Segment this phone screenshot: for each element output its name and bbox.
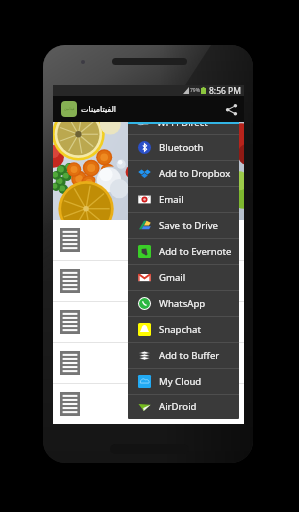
button[interactable]: Gmail <box>128 265 239 290</box>
button[interactable]: AirDroid <box>128 395 239 418</box>
staticText: Wi-Fi Direct <box>157 122 208 128</box>
button[interactable] <box>53 220 244 260</box>
button[interactable] <box>53 343 244 383</box>
staticText: Snapchat <box>159 323 201 336</box>
button[interactable] <box>128 124 239 134</box>
button[interactable]: Add to Dropbox <box>128 161 239 186</box>
staticText: Bluetooth <box>159 141 204 154</box>
button[interactable]: WhatsApp <box>128 291 239 316</box>
staticText: 8:56 PM <box>209 85 241 96</box>
button[interactable]: My Cloud <box>128 369 239 394</box>
staticText: Add to Dropbox <box>159 167 231 180</box>
staticText: Add to Evernote <box>159 245 232 258</box>
button[interactable]: Save to Drive <box>128 213 239 238</box>
staticText: WhatsApp <box>159 297 206 310</box>
staticText: الفيتامينات <box>81 105 117 114</box>
staticText: AirDroid <box>159 400 197 413</box>
staticText: Email <box>159 193 184 206</box>
button[interactable] <box>53 384 244 424</box>
button[interactable]: Share <box>218 96 244 122</box>
button[interactable]: Snapchat <box>128 317 239 342</box>
button[interactable] <box>53 302 244 342</box>
staticText: 79% <box>190 87 200 94</box>
staticText: فيتامين <box>64 107 75 111</box>
staticText: Save to Drive <box>159 219 218 232</box>
button[interactable]: Add to Buffer <box>128 343 239 368</box>
staticText: Gmail <box>159 271 186 284</box>
staticText: Add to Buffer <box>159 349 220 362</box>
button[interactable]: Bluetooth <box>128 135 239 160</box>
staticText: My Cloud <box>159 375 202 388</box>
button[interactable]: Email <box>128 187 239 212</box>
button[interactable] <box>53 261 244 301</box>
button[interactable]: Add to Evernote <box>128 239 239 264</box>
